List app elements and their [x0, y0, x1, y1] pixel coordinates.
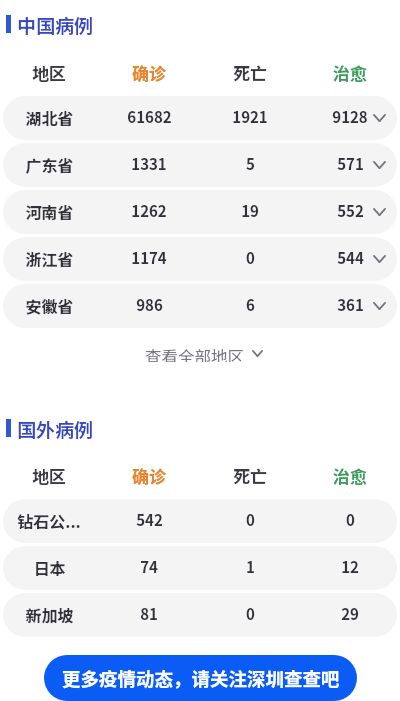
button[interactable]: 查看全部地区: [139, 342, 269, 364]
staticText: 542: [136, 509, 163, 531]
staticText: 0: [246, 603, 255, 625]
staticText: 治愈: [333, 60, 367, 82]
staticText: 61682: [127, 106, 172, 128]
staticText: 552: [337, 200, 364, 222]
button[interactable]: 钻石公...: [3, 499, 397, 543]
staticText: 81: [140, 603, 158, 625]
staticText: 0: [246, 509, 255, 531]
button[interactable]: 湖北省: [3, 96, 397, 140]
staticText: 湖北省: [25, 106, 74, 129]
staticText: 浙江省: [25, 247, 74, 270]
staticText: 544: [337, 247, 364, 269]
staticText: 新加坡: [25, 603, 74, 626]
staticText: 0: [246, 247, 255, 269]
staticText: 5: [246, 153, 255, 175]
staticText: 河南省: [25, 200, 74, 223]
button[interactable]: 新加坡: [3, 593, 397, 637]
button[interactable]: 广东省: [3, 143, 397, 187]
staticText: 日本: [33, 556, 66, 579]
staticText: 确诊: [132, 463, 166, 485]
staticText: 19: [241, 200, 259, 222]
staticText: 中国病例: [17, 11, 94, 39]
staticText: 1: [246, 556, 255, 578]
button[interactable]: 更多疫情动态，请关注深圳查查吧: [44, 655, 357, 701]
staticText: 986: [136, 294, 163, 316]
staticText: 1921: [232, 106, 268, 128]
staticText: 安徽省: [25, 294, 74, 317]
staticText: 广东省: [25, 153, 74, 176]
staticText: 1331: [131, 153, 167, 175]
staticText: 地区: [32, 60, 66, 82]
button[interactable]: 安徽省: [3, 284, 397, 328]
staticText: 0: [346, 509, 355, 531]
staticText: 死亡: [233, 60, 267, 82]
staticText: 更多疫情动态，请关注深圳查查吧: [62, 665, 340, 692]
staticText: 确诊: [132, 60, 166, 82]
staticText: 571: [337, 153, 364, 175]
button[interactable]: 日本: [3, 546, 397, 590]
staticText: 29: [341, 603, 359, 625]
staticText: 9128: [332, 106, 368, 128]
staticText: 12: [341, 556, 359, 578]
staticText: 死亡: [233, 463, 267, 485]
staticText: 钻石公...: [17, 509, 81, 532]
staticText: 6: [246, 294, 255, 316]
staticText: 361: [337, 294, 364, 316]
staticText: 查看全部地区: [145, 344, 244, 362]
staticText: 74: [140, 556, 158, 578]
staticText: 地区: [32, 463, 66, 485]
button[interactable]: 河南省: [3, 190, 397, 234]
staticText: 治愈: [333, 463, 367, 485]
staticText: 1262: [131, 200, 167, 222]
button[interactable]: 浙江省: [3, 237, 397, 281]
staticText: 国外病例: [17, 415, 94, 443]
staticText: 1174: [131, 247, 167, 269]
